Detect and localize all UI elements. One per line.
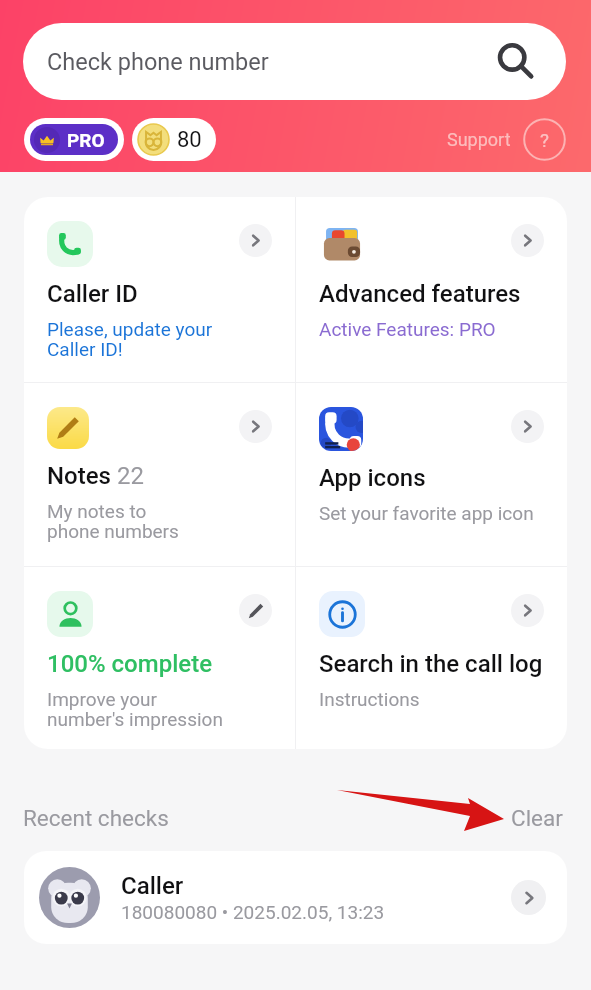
staticText: Support — [447, 129, 511, 150]
button[interactable]: Open — [239, 224, 272, 257]
staticText: Check phone number — [47, 48, 269, 76]
staticText: Caller — [121, 872, 184, 900]
staticText: My notes to phone numbers — [47, 500, 179, 543]
staticText: Instructions — [319, 688, 420, 710]
button[interactable]: Clear — [511, 805, 563, 831]
staticText: Clear — [511, 805, 563, 831]
button[interactable]: Check phone number — [23, 23, 566, 100]
button[interactable]: Advanced features — [296, 197, 567, 382]
staticText: Active Features: PRO — [319, 318, 496, 340]
button[interactable]: Notes — [24, 383, 295, 566]
staticText: 22 — [111, 462, 144, 490]
staticText: Caller ID — [47, 280, 138, 308]
staticText: Recent checks — [23, 805, 169, 831]
button[interactable]: 80 — [132, 118, 216, 161]
button[interactable]: Open — [511, 880, 546, 915]
button[interactable]: 100% complete — [24, 567, 295, 749]
staticText: Search in the call log — [319, 650, 543, 678]
button[interactable]: PRO — [24, 118, 124, 161]
button[interactable]: Support — [447, 118, 566, 161]
button[interactable]: Caller ID — [24, 197, 295, 382]
button[interactable]: Open — [239, 410, 272, 443]
staticText: Advanced features — [319, 280, 521, 308]
staticText: Set your favorite app icon — [319, 502, 534, 524]
button[interactable]: Open — [511, 594, 544, 627]
button[interactable]: App icons — [296, 383, 567, 566]
staticText: App icons — [319, 464, 426, 492]
staticText: Please, update your Caller ID! — [47, 318, 213, 361]
staticText: 80 — [177, 127, 202, 153]
button[interactable]: Caller — [24, 851, 567, 944]
staticText: PRO — [67, 129, 105, 151]
staticText: Notes — [47, 462, 111, 490]
button[interactable]: Open — [511, 410, 544, 443]
staticText: Improve your number's impression — [47, 688, 223, 731]
staticText: 100% complete — [47, 650, 213, 678]
staticText: 180080080 • 2025.02.05, 13:23 — [121, 901, 385, 923]
other: Search — [497, 43, 535, 81]
button[interactable]: Open — [511, 224, 544, 257]
staticText: ? — [540, 129, 549, 151]
button[interactable]: Edit — [239, 594, 272, 627]
button[interactable]: Search in the call log — [296, 567, 567, 749]
